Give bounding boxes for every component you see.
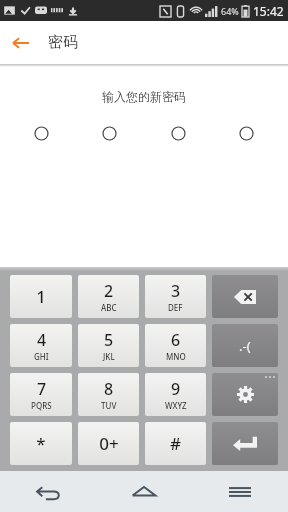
- button[interactable]: #: [145, 422, 206, 465]
- button[interactable]: 8: [78, 373, 139, 416]
- staticText: ABC: [101, 302, 117, 313]
- button[interactable]: *: [10, 422, 72, 465]
- staticText: 9: [171, 378, 181, 400]
- button[interactable]: 7: [10, 373, 72, 416]
- staticText: 3: [171, 280, 181, 302]
- staticText: 64%: [221, 5, 239, 17]
- staticText: 4: [37, 329, 47, 351]
- button[interactable]: 9: [145, 373, 206, 416]
- button[interactable]: Enter: [212, 422, 278, 465]
- button[interactable]: Emoticon: [212, 324, 278, 367]
- staticText: *: [36, 432, 46, 455]
- staticText: 5: [104, 329, 114, 351]
- button[interactable]: Settings: [212, 373, 278, 416]
- button[interactable]: 4: [10, 324, 72, 367]
- button[interactable]: 0+: [78, 422, 139, 465]
- button[interactable]: Backspace: [212, 275, 278, 318]
- staticText: 2: [104, 280, 114, 302]
- button[interactable]: 6: [145, 324, 206, 367]
- staticText: 15:42: [253, 3, 284, 19]
- button[interactable]: 3: [145, 275, 206, 318]
- staticText: MNO: [166, 351, 186, 362]
- staticText: PQRS: [31, 400, 52, 411]
- button[interactable]: Back: [0, 23, 40, 63]
- staticText: .-(: [239, 337, 251, 355]
- staticText: 1: [36, 285, 46, 308]
- staticText: 输入您的新密码: [102, 89, 186, 104]
- staticText: JKL: [103, 351, 115, 362]
- staticText: GHI: [34, 351, 49, 362]
- button[interactable]: Menu: [192, 471, 288, 512]
- staticText: 6: [171, 329, 181, 351]
- staticText: #: [170, 432, 181, 455]
- button[interactable]: 5: [78, 324, 139, 367]
- staticText: 密码: [48, 33, 78, 52]
- staticText: 0+: [99, 432, 119, 455]
- button[interactable]: 2: [78, 275, 139, 318]
- staticText: WXYZ: [165, 400, 187, 411]
- staticText: DEF: [168, 302, 183, 313]
- staticText: TUV: [101, 400, 117, 411]
- staticText: 7: [37, 378, 47, 400]
- button[interactable]: 1: [10, 275, 72, 318]
- staticText: 8: [104, 378, 114, 400]
- button[interactable]: Home: [96, 471, 192, 512]
- button[interactable]: Back: [0, 471, 96, 512]
